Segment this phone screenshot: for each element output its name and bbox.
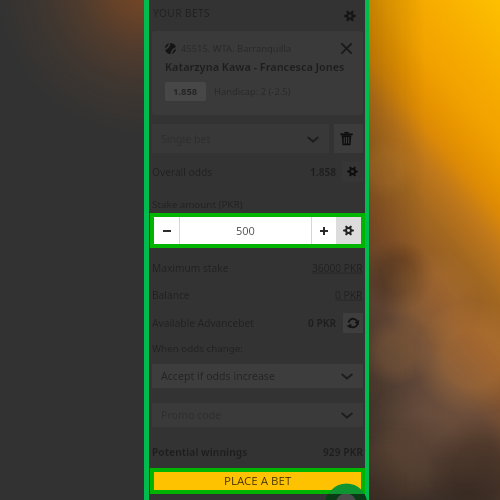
staticText: YOUR BETS bbox=[153, 6, 211, 20]
staticText: When odds change: bbox=[152, 342, 243, 355]
staticText: 929 PKR bbox=[323, 445, 363, 459]
button[interactable]: Stake settings bbox=[336, 217, 361, 244]
button[interactable]: Accept if odds increase bbox=[152, 364, 363, 388]
button[interactable]: Maximum stake bbox=[152, 256, 363, 280]
button[interactable]: 45515. WTA. Barranquilla bbox=[152, 31, 363, 115]
button[interactable]: Odds change settings bbox=[342, 161, 363, 182]
staticText: Maximum stake bbox=[152, 261, 229, 275]
button[interactable]: PLACE A BET bbox=[154, 472, 361, 490]
staticText: 36000 PKR bbox=[312, 261, 363, 275]
button[interactable]: 500 bbox=[180, 217, 311, 244]
staticText: Overall odds bbox=[152, 165, 213, 179]
staticText: 45515. WTA. Barranquilla bbox=[181, 42, 292, 55]
button[interactable]: Decrease stake bbox=[154, 217, 179, 244]
staticText: 0 PKR bbox=[335, 288, 363, 302]
staticText: Katarzyna Kawa - Francesca Jones bbox=[165, 60, 345, 75]
button[interactable]: Increase stake bbox=[312, 217, 336, 244]
button[interactable]: Remove bet bbox=[332, 34, 360, 62]
staticText: Available Advancebet bbox=[152, 316, 254, 330]
staticText: 0 PKR bbox=[308, 316, 337, 330]
staticText: 1.858 bbox=[173, 85, 198, 98]
staticText: Single bet bbox=[161, 132, 211, 146]
button[interactable]: Delete all bets bbox=[334, 124, 363, 153]
staticText: PLACE A BET bbox=[224, 473, 292, 489]
button[interactable]: Refresh advancebet bbox=[343, 313, 363, 333]
button[interactable]: Bet slip settings bbox=[338, 4, 362, 28]
button[interactable]: Bet slip bbox=[0, 0, 500, 500]
staticText: Accept if odds increase bbox=[161, 369, 275, 383]
staticText: Potential winnings bbox=[152, 445, 248, 459]
staticText: 500 bbox=[236, 223, 255, 238]
staticText: 1.858 bbox=[310, 165, 337, 179]
staticText: Handicap: 2 (-2.5) bbox=[214, 85, 291, 98]
staticText: Balance bbox=[152, 288, 190, 302]
staticText: Promo code bbox=[161, 408, 222, 422]
button[interactable]: YOUR BETS bbox=[149, 0, 365, 31]
staticText: Stake amount (PKR) bbox=[152, 198, 243, 211]
